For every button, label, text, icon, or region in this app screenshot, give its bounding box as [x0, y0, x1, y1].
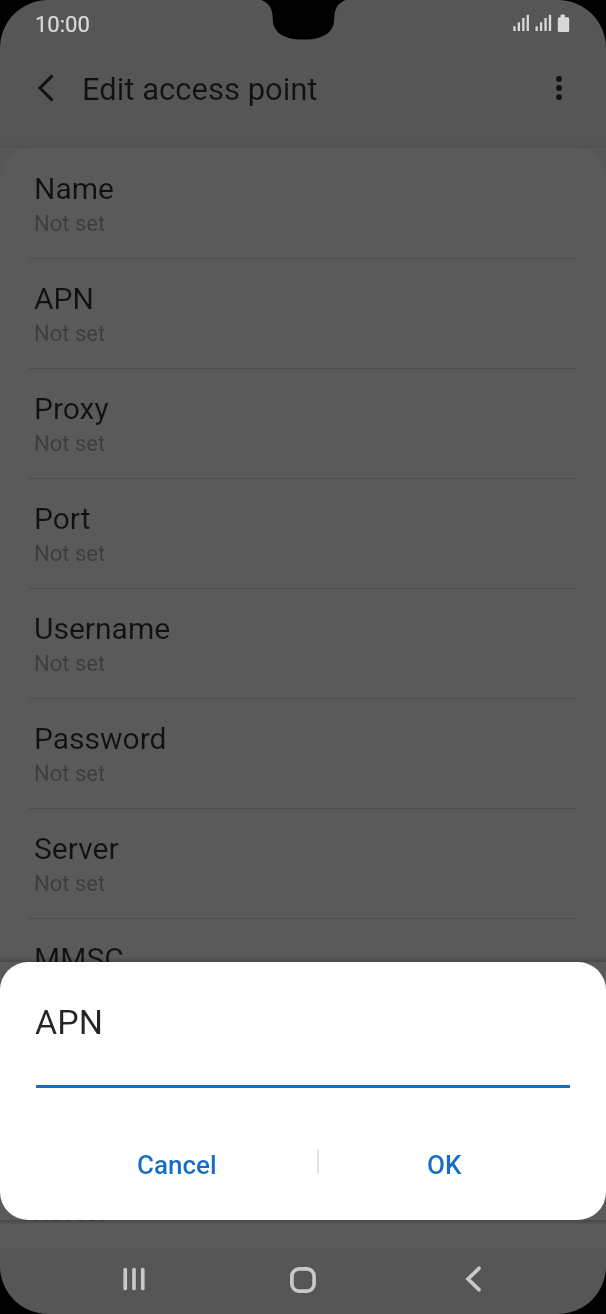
- staticText: Proxy: [34, 391, 109, 426]
- staticText: Not set: [34, 541, 106, 567]
- staticText: Server: [34, 831, 119, 866]
- staticText: APN: [35, 1002, 103, 1042]
- button[interactable]: More options: [537, 66, 581, 110]
- staticText: Username: [34, 611, 171, 646]
- staticText: Port: [34, 501, 91, 536]
- button[interactable]: Proxy: [0, 368, 606, 478]
- button[interactable]: Cancel: [36, 1129, 318, 1201]
- staticText: 10:00: [35, 12, 90, 38]
- button[interactable]: MMS port: [0, 1138, 606, 1248]
- button[interactable]: Username: [0, 588, 606, 698]
- staticText: Password: [34, 721, 167, 756]
- button[interactable]: Back: [433, 1239, 513, 1314]
- staticText: Cancel: [137, 1150, 217, 1180]
- staticText: Not set: [34, 321, 106, 347]
- staticText: APN: [34, 281, 94, 316]
- staticText: MMSC: [34, 941, 124, 976]
- staticText: Edit access point: [82, 71, 318, 107]
- button[interactable]: Port: [0, 478, 606, 588]
- staticText: Not set: [34, 431, 106, 457]
- button[interactable]: Navigate up: [24, 66, 68, 110]
- button[interactable]: MMSC: [0, 918, 606, 1028]
- staticText: OK: [427, 1150, 462, 1180]
- staticText: Not set: [34, 761, 106, 787]
- button[interactable]: Server: [0, 808, 606, 918]
- staticText: MMS port: [34, 1161, 167, 1196]
- button[interactable]: Home: [263, 1240, 343, 1314]
- button[interactable]: Password: [0, 698, 606, 808]
- staticText: Not set: [34, 1201, 106, 1227]
- button[interactable]: Recent apps: [94, 1239, 174, 1314]
- staticText: Name: [34, 171, 114, 206]
- button[interactable]: APN: [0, 258, 606, 368]
- staticText: Not set: [34, 211, 106, 237]
- button[interactable]: MMS proxy: [0, 1028, 606, 1138]
- button[interactable]: Name: [0, 148, 606, 258]
- staticText: MMS proxy: [34, 1051, 185, 1086]
- button[interactable]: OK: [318, 1129, 570, 1201]
- staticText: Not set: [34, 871, 106, 897]
- staticText: Not set: [34, 651, 106, 677]
